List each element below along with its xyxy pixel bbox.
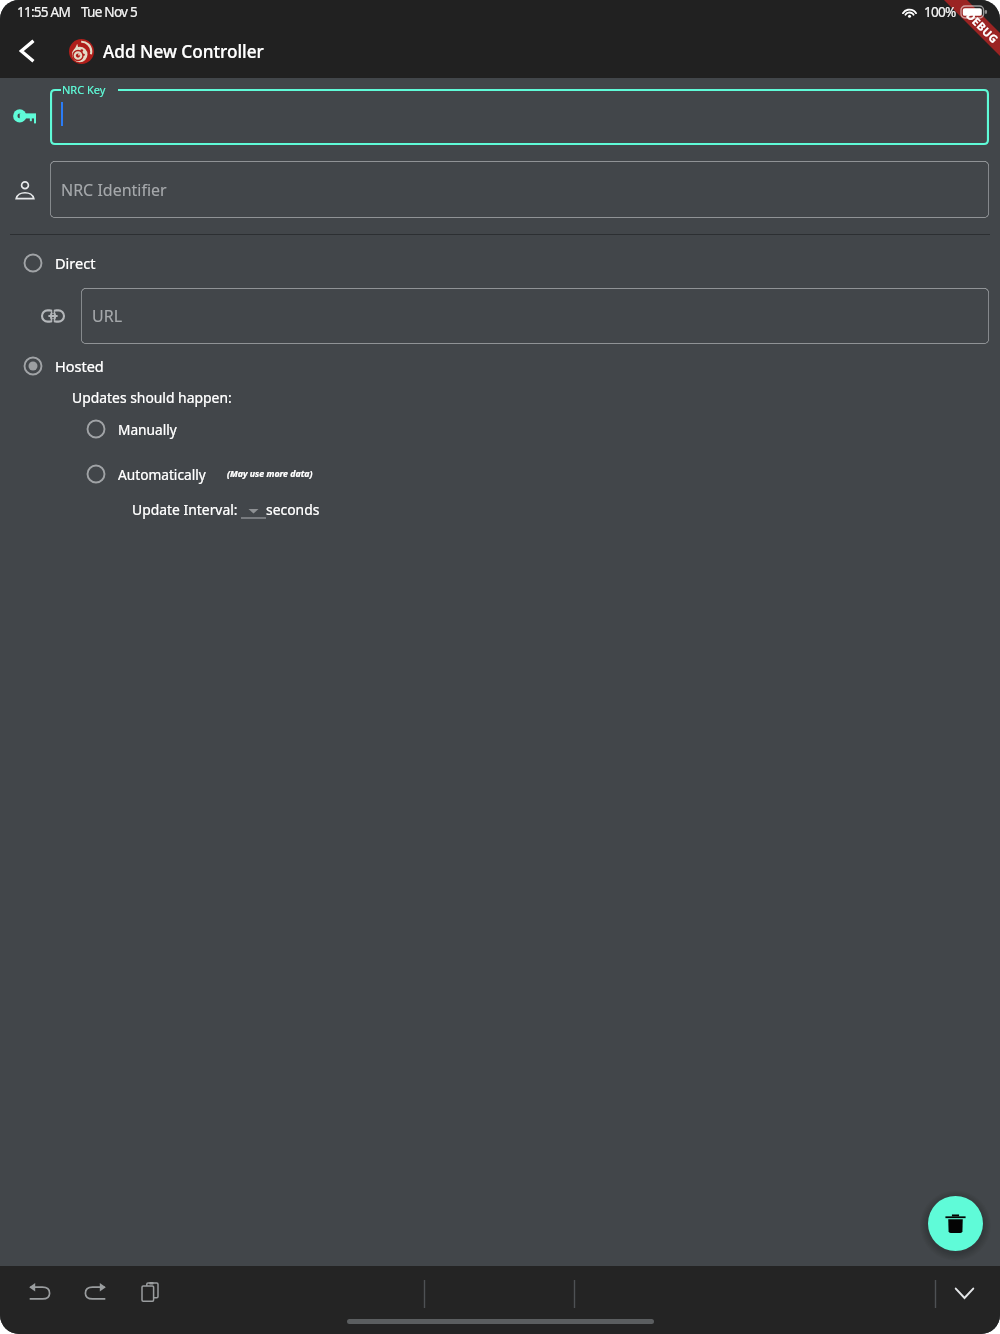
button[interactable]: Automatically (81, 459, 206, 489)
staticText: URL (92, 305, 123, 327)
staticText: NRC Key (62, 82, 106, 97)
staticText: 11:55 AM (17, 2, 71, 21)
staticText: Update Interval: (132, 500, 238, 519)
staticText: Direct (55, 253, 96, 273)
button[interactable]: Hosted (18, 351, 104, 381)
staticText: Automatically (118, 465, 206, 484)
button[interactable]: Manually (81, 414, 177, 444)
staticText: Hosted (55, 356, 104, 376)
button[interactable]: URL (81, 288, 989, 344)
staticText: (May use more data) (227, 468, 313, 480)
button[interactable]: Update interval (241, 501, 266, 519)
button[interactable]: NRC Key (50, 89, 989, 145)
button[interactable]: Hide keyboard (945, 1273, 983, 1311)
staticText: seconds (266, 500, 320, 519)
staticText: 100% (924, 2, 956, 21)
button[interactable]: Back (0, 24, 54, 78)
button[interactable]: Paste (131, 1273, 169, 1311)
button[interactable]: NRC Identifier (50, 161, 989, 218)
button[interactable]: Redo (76, 1273, 114, 1311)
staticText: Manually (118, 420, 177, 439)
button[interactable]: Direct (18, 248, 96, 278)
button[interactable]: Undo (21, 1273, 59, 1311)
staticText: Updates should happen: (72, 388, 232, 407)
staticText: Tue Nov 5 (81, 2, 137, 21)
staticText: Add New Controller (103, 40, 264, 63)
button[interactable]: Delete (928, 1196, 983, 1251)
staticText: NRC Identifier (61, 179, 167, 201)
